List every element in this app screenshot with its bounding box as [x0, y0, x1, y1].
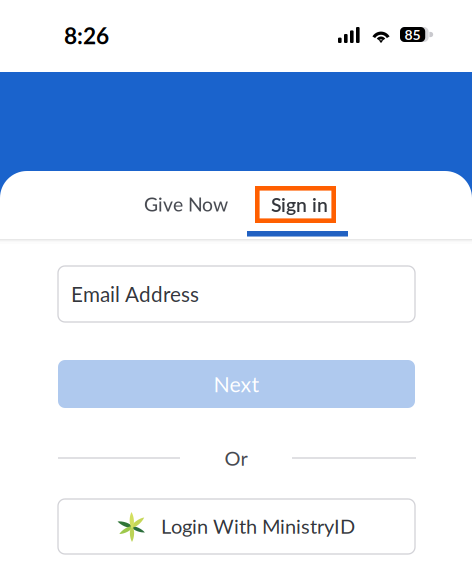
staticText: Or [224, 446, 247, 470]
staticText: Sign in [271, 193, 328, 216]
button[interactable]: Sign in [255, 186, 336, 223]
staticText: Login With MinistryID [161, 514, 355, 538]
staticText: Give Now [144, 192, 228, 216]
button[interactable]: Next [58, 360, 415, 408]
staticText: 8:26 [64, 22, 109, 49]
staticText: Email Address [71, 282, 199, 306]
button[interactable]: Login With MinistryID [58, 499, 415, 554]
button[interactable]: Give Now [126, 185, 246, 223]
staticText: 85 [405, 26, 421, 43]
staticText: Next [213, 371, 259, 397]
